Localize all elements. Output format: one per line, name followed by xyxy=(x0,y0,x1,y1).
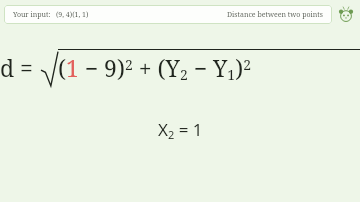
staticText: Your input: (9, 4)(1, 1) xyxy=(13,10,89,20)
button[interactable]: Site logo xyxy=(336,5,356,24)
button[interactable]: Your input: (9, 4)(1, 1) xyxy=(4,5,332,24)
staticText: (1 − 9)2 + (Y2 − Y1)2 xyxy=(58,52,251,84)
staticText: d = xyxy=(0,52,33,83)
staticText: X2 = 1 xyxy=(158,118,203,142)
staticText: Distance between two points xyxy=(227,10,323,20)
